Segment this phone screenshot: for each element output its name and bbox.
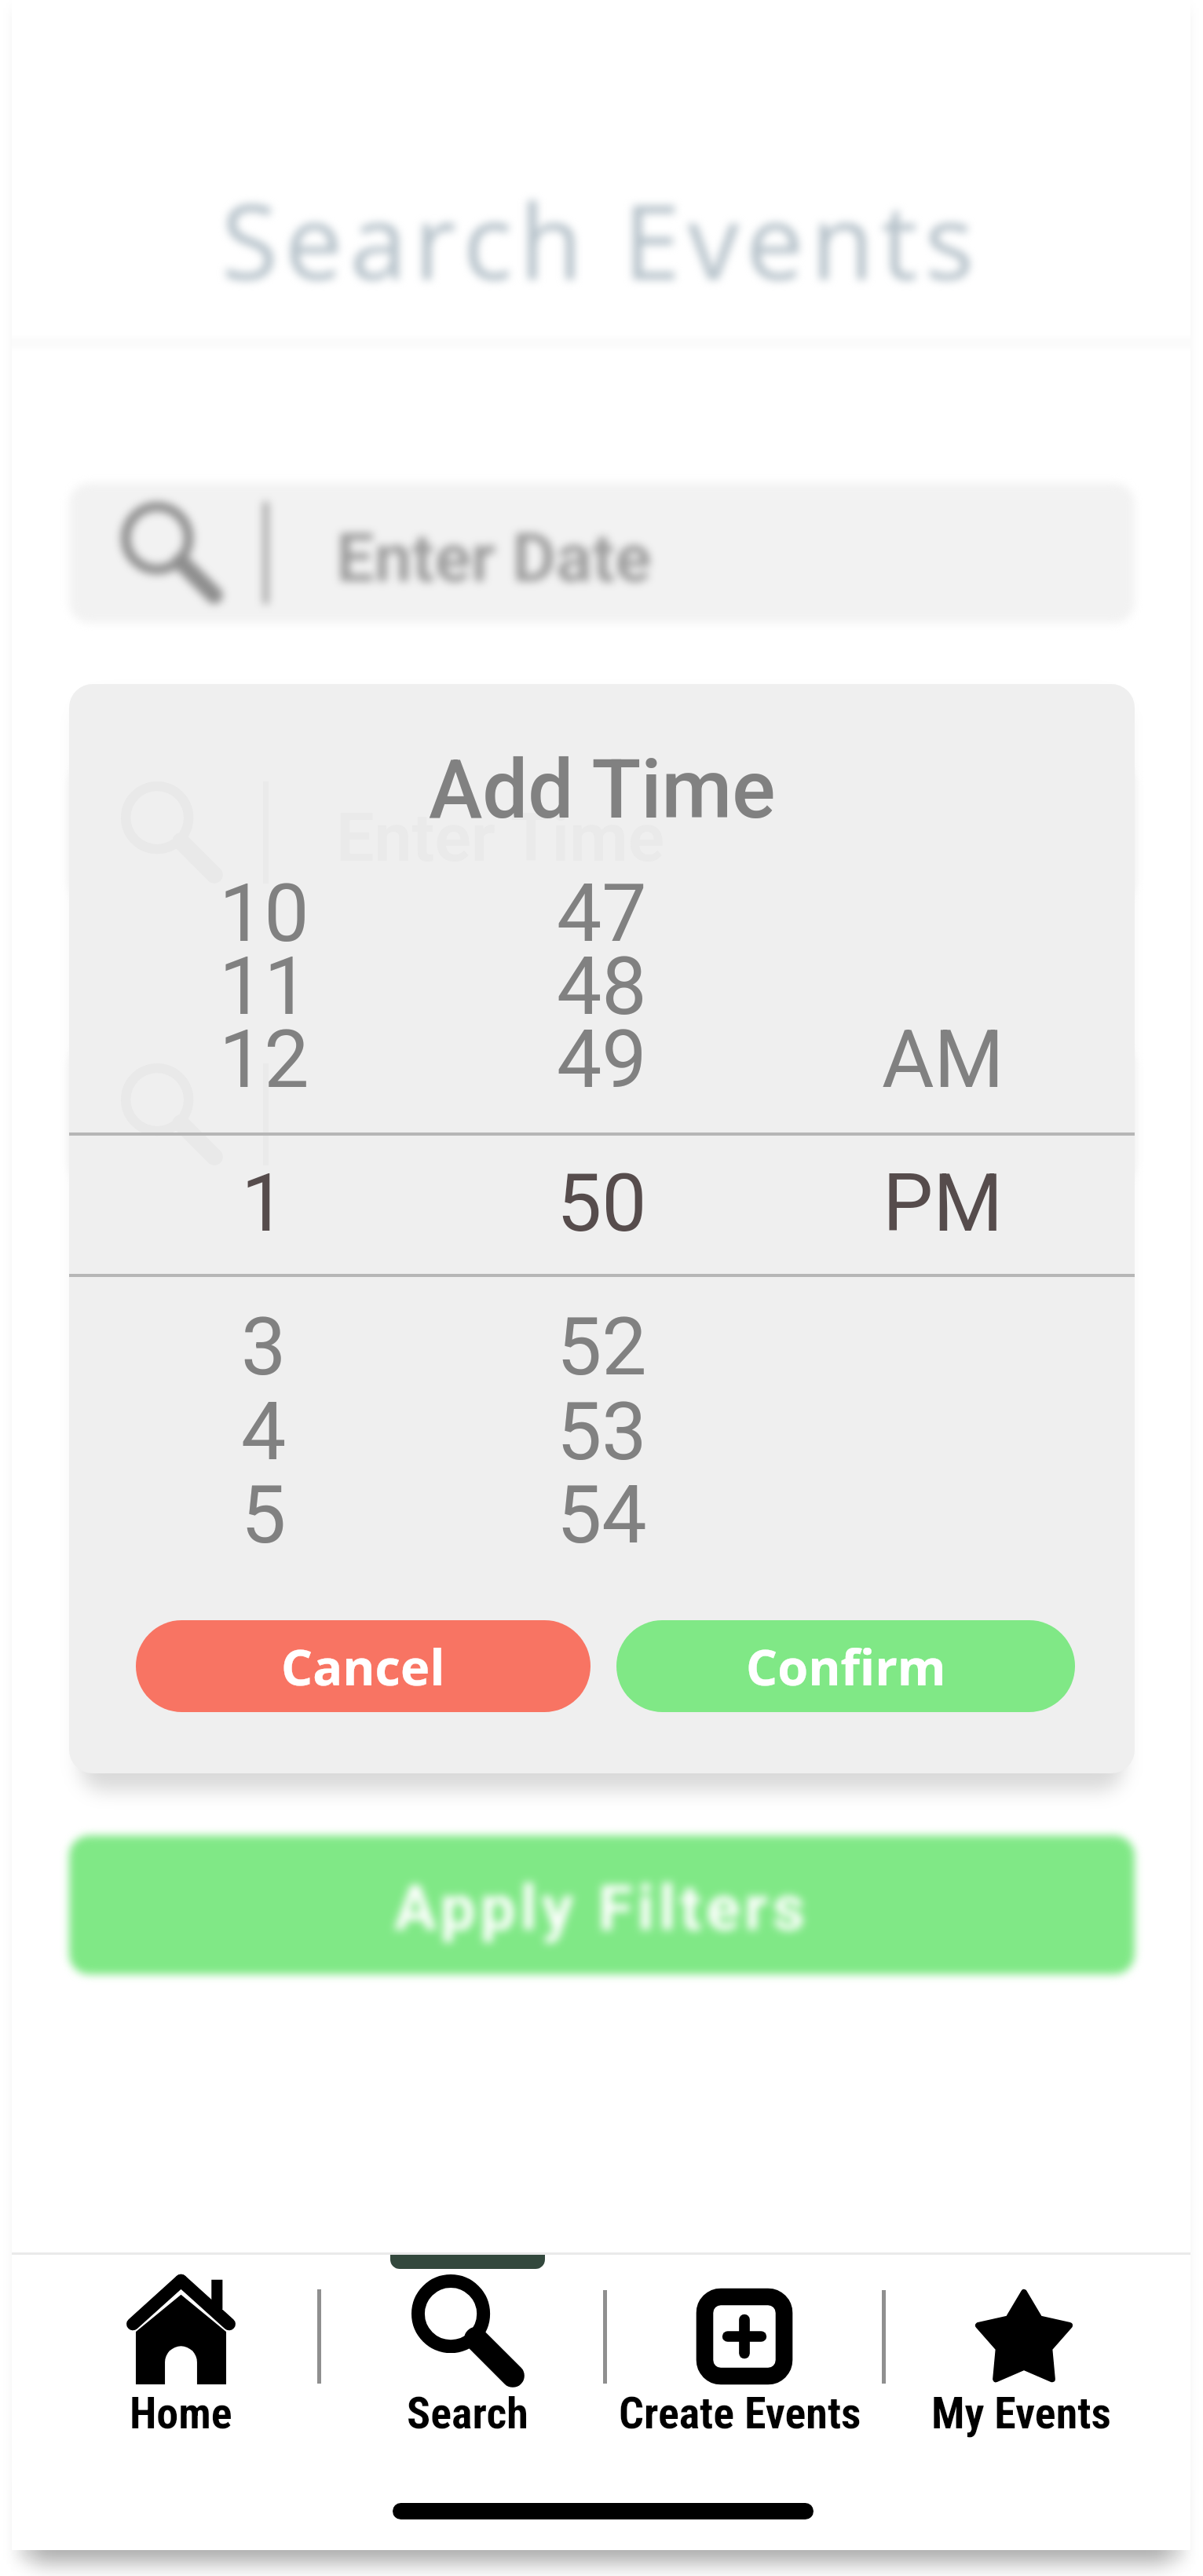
button[interactable]: 48 bbox=[476, 938, 727, 1035]
button[interactable]: Enter Date bbox=[69, 483, 1135, 623]
button[interactable]: Confirm bbox=[616, 1620, 1075, 1712]
staticText: 3 bbox=[241, 1300, 287, 1394]
button[interactable]: 4 bbox=[138, 1383, 389, 1480]
button[interactable]: 52 bbox=[476, 1298, 727, 1396]
staticText: 53 bbox=[557, 1385, 647, 1479]
button[interactable]: 50 bbox=[476, 1154, 727, 1252]
staticText: 49 bbox=[557, 1012, 647, 1107]
staticText: 5 bbox=[241, 1468, 287, 1562]
staticText: 52 bbox=[557, 1300, 647, 1394]
staticText: PM bbox=[883, 1156, 1004, 1250]
staticText: 11 bbox=[219, 939, 309, 1034]
button[interactable]: 10 bbox=[138, 865, 389, 962]
staticText: 12 bbox=[219, 1012, 309, 1107]
button[interactable]: Enter Time bbox=[69, 763, 1135, 902]
staticText: Enter Time bbox=[336, 798, 665, 877]
staticText: Add Time bbox=[429, 742, 776, 837]
button[interactable]: PM bbox=[817, 1154, 1069, 1252]
staticText: My Events bbox=[931, 2388, 1111, 2439]
staticText: Create Events bbox=[619, 2388, 861, 2439]
button[interactable] bbox=[69, 1045, 1135, 1184]
button[interactable]: 47 bbox=[476, 865, 727, 962]
button[interactable]: My Events bbox=[887, 2263, 1154, 2439]
staticText: 4 bbox=[241, 1385, 287, 1479]
staticText: AM bbox=[882, 1012, 1004, 1107]
button[interactable]: 49 bbox=[476, 1011, 727, 1108]
staticText: Confirm bbox=[746, 1633, 946, 1700]
button[interactable]: 5 bbox=[138, 1466, 389, 1564]
staticText: 47 bbox=[557, 866, 647, 961]
staticText: 10 bbox=[219, 866, 309, 961]
staticText: 48 bbox=[557, 939, 647, 1034]
button[interactable]: 12 bbox=[138, 1011, 389, 1108]
button[interactable]: Search bbox=[334, 2263, 601, 2439]
button[interactable]: AM bbox=[817, 1011, 1069, 1108]
staticText: Home bbox=[130, 2388, 232, 2439]
button[interactable]: Create Events bbox=[606, 2263, 873, 2439]
staticText: Enter Time bbox=[336, 798, 665, 877]
button[interactable]: Home bbox=[47, 2263, 314, 2439]
staticText: Enter Date bbox=[336, 518, 652, 598]
staticText: Cancel bbox=[281, 1633, 445, 1700]
staticText: Search Events bbox=[221, 170, 982, 309]
button[interactable]: 11 bbox=[138, 938, 389, 1035]
button[interactable]: Apply Filters bbox=[69, 1835, 1135, 1974]
staticText: 54 bbox=[557, 1468, 647, 1562]
staticText: 50 bbox=[557, 1156, 647, 1250]
staticText: 1 bbox=[241, 1156, 287, 1250]
button[interactable]: 53 bbox=[476, 1383, 727, 1480]
button[interactable]: 54 bbox=[476, 1466, 727, 1564]
staticText: Apply Filters bbox=[394, 1872, 810, 1945]
button[interactable]: 1 bbox=[138, 1154, 389, 1252]
button[interactable]: Cancel bbox=[136, 1620, 591, 1712]
staticText: Search bbox=[407, 2388, 528, 2439]
button[interactable]: 3 bbox=[138, 1298, 389, 1396]
